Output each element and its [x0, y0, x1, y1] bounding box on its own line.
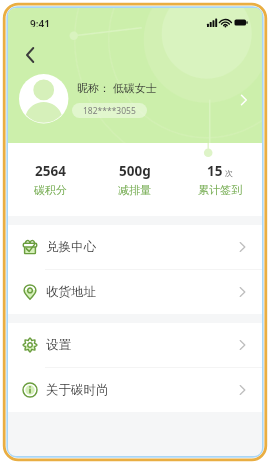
other: Profile detail: [234, 90, 254, 110]
staticText: 次: [225, 168, 233, 178]
staticText: 15: [207, 162, 223, 180]
button[interactable]: 500g: [92, 162, 177, 197]
staticText: 昵称： 低碳女士: [77, 80, 157, 95]
staticText: 兑换中心: [46, 239, 96, 255]
staticText: 2564: [35, 162, 66, 180]
staticText: 收货地址: [46, 284, 96, 300]
staticText: 设置: [46, 337, 71, 353]
staticText: 累计签到: [198, 183, 242, 197]
button[interactable]: 关于碳时尚: [8, 368, 262, 412]
button[interactable]: 兑换中心: [8, 225, 262, 269]
button[interactable]: 2564: [8, 162, 92, 197]
staticText: 182****3055: [83, 105, 136, 117]
button[interactable]: Back: [21, 45, 45, 69]
button[interactable]: 15: [177, 162, 262, 197]
button[interactable]: 收货地址: [8, 270, 262, 314]
staticText: 碳积分: [34, 183, 67, 197]
button[interactable]: 设置: [8, 323, 262, 367]
staticText: 500g: [119, 162, 151, 180]
staticText: 减排量: [118, 183, 151, 197]
button[interactable]: 昵称： 低碳女士: [8, 66, 262, 126]
staticText: 关于碳时尚: [46, 382, 109, 398]
staticText: 9:41: [30, 17, 50, 27]
